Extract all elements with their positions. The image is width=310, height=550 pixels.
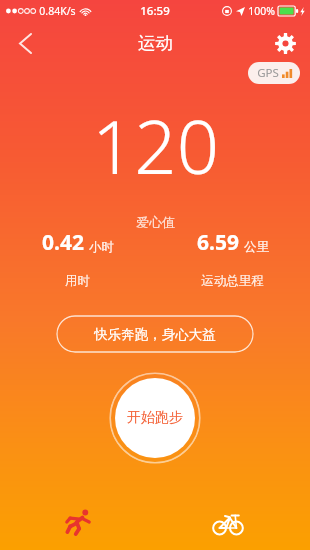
staticText: 运动 [138, 32, 173, 54]
button[interactable]: 0.42 [0, 228, 155, 289]
button[interactable]: 开始跑步 [109, 372, 201, 464]
button[interactable]: Run [56, 500, 100, 544]
staticText: 快乐奔跑，身心大益 [94, 326, 216, 343]
button[interactable]: 快乐奔跑，身心大益 [56, 315, 254, 353]
button[interactable]: Settings [268, 26, 302, 60]
staticText: 运动总里程 [201, 273, 264, 289]
staticText: 16:59 [140, 3, 170, 19]
staticText: 0.84K/s [39, 4, 76, 18]
staticText: GPS [257, 65, 279, 81]
staticText: 6.59 [197, 228, 239, 257]
staticText: 0.42 [42, 228, 84, 257]
staticText: 用时 [65, 273, 90, 289]
button[interactable]: Back [6, 24, 44, 62]
staticText: 100% [248, 4, 275, 18]
staticText: 爱心值 [136, 214, 175, 230]
staticText: 小时 [89, 239, 114, 255]
button[interactable]: Cycle [206, 500, 250, 544]
staticText: 开始跑步 [127, 409, 183, 427]
staticText: 120 [92, 95, 219, 196]
button[interactable]: GPS [248, 62, 300, 84]
staticText: 公里 [244, 239, 269, 255]
button[interactable]: 6.59 [155, 228, 310, 289]
